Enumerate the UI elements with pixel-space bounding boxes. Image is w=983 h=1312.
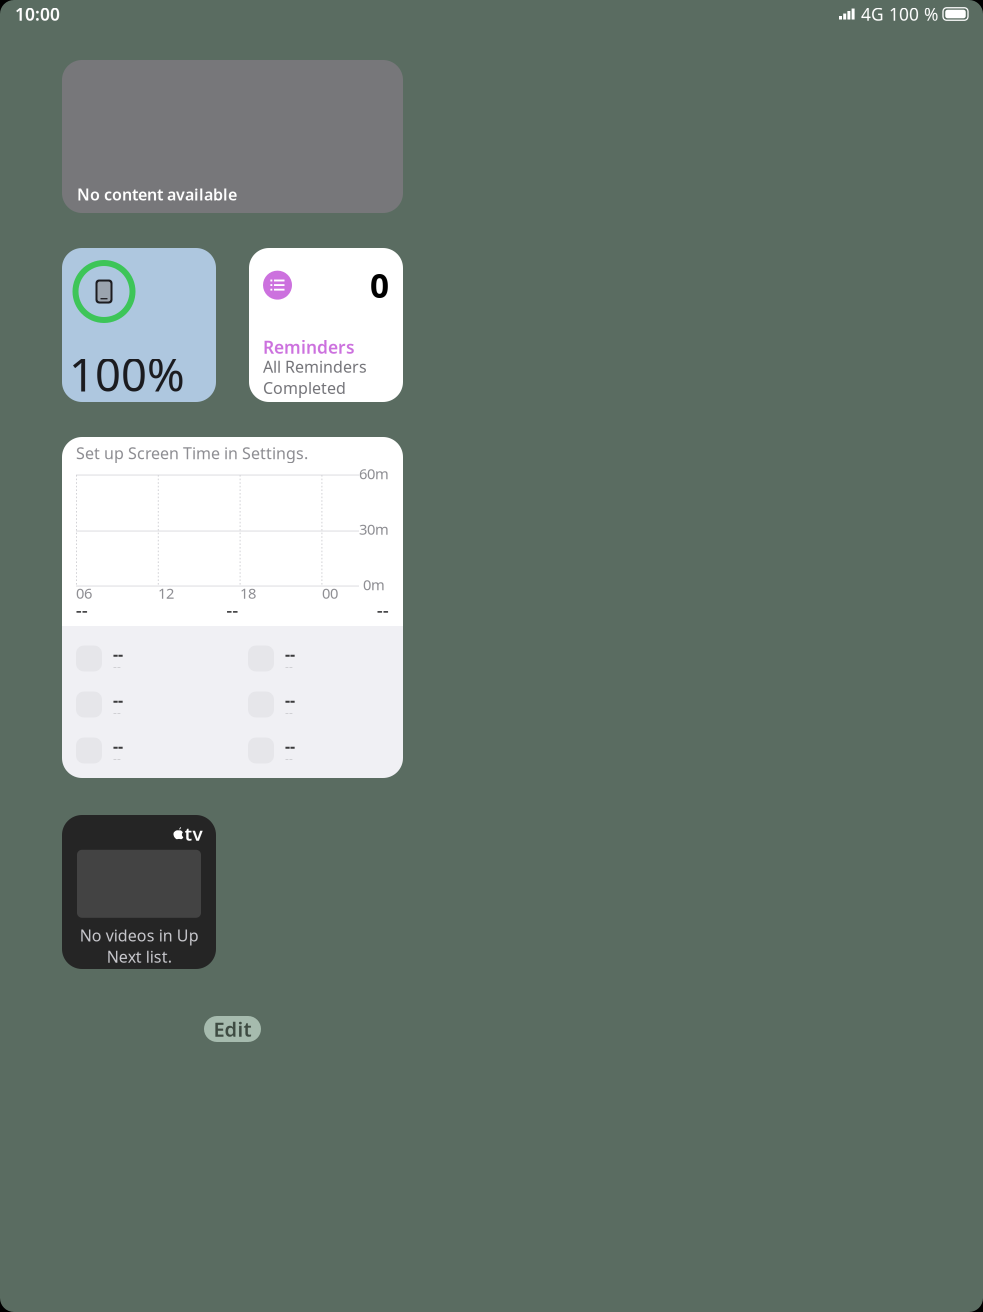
staticText: No videos in Up Next list.: [79, 925, 198, 967]
staticText: tv: [184, 821, 202, 846]
staticText: 06: [76, 583, 92, 603]
button[interactable]: Edit: [204, 1016, 261, 1042]
staticText: 0: [370, 263, 389, 307]
staticText: 12: [158, 583, 174, 603]
staticText: --: [113, 689, 123, 710]
staticText: All Reminders Completed: [263, 356, 367, 398]
staticText: --: [285, 643, 295, 664]
staticText: 30m: [359, 519, 389, 539]
staticText: 100%: [69, 344, 185, 404]
staticText: --: [113, 643, 123, 664]
staticText: --: [285, 689, 295, 710]
staticText: --: [285, 750, 293, 766]
button[interactable]: tv: [62, 815, 216, 969]
staticText: Set up Screen Time in Settings.: [76, 442, 308, 464]
staticText: --: [76, 598, 88, 621]
staticText: 4G 100 %: [856, 2, 943, 25]
staticText: --: [226, 598, 238, 621]
staticText: 60m: [359, 464, 389, 483]
button[interactable]: No content available: [62, 60, 403, 213]
staticText: --: [377, 598, 389, 621]
staticText: --: [285, 658, 293, 674]
button[interactable]: 100%: [62, 248, 216, 402]
staticText: Reminders: [263, 335, 355, 358]
staticText: 0m: [363, 575, 385, 594]
staticText: --: [285, 704, 293, 720]
staticText: 00: [322, 583, 338, 603]
staticText: --: [113, 735, 123, 756]
staticText: 18: [240, 583, 256, 603]
staticText: --: [113, 704, 121, 720]
staticText: No content available: [77, 184, 237, 205]
staticText: --: [113, 750, 121, 766]
staticText: --: [113, 658, 121, 674]
staticText: --: [285, 735, 295, 756]
staticText: 10:00: [15, 2, 60, 25]
button[interactable]: 0: [249, 248, 403, 402]
button[interactable]: Set up Screen Time in Settings.: [62, 437, 403, 778]
staticText: Edit: [213, 1016, 251, 1042]
